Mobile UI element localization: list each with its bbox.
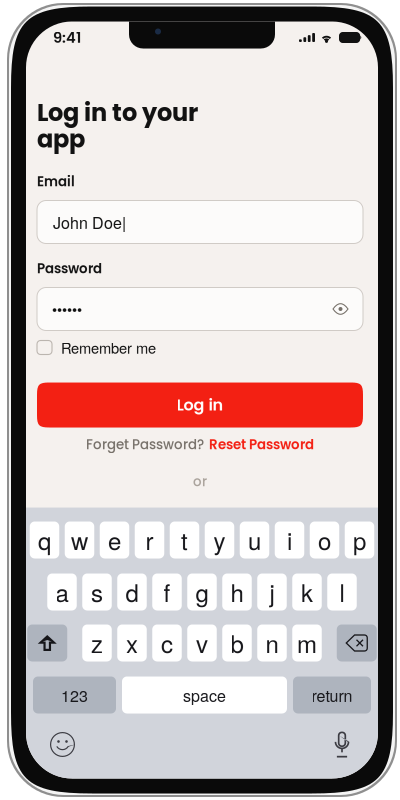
button[interactable]: r <box>135 521 164 558</box>
staticText: c <box>161 626 173 660</box>
staticText: p <box>353 523 366 557</box>
button[interactable]: Dictation <box>334 731 350 757</box>
button[interactable]: a <box>47 573 77 610</box>
button[interactable]: b <box>222 624 252 661</box>
staticText: h <box>230 575 243 609</box>
staticText: 9:41 <box>53 27 81 48</box>
staticText: r <box>145 523 153 557</box>
staticText: y <box>213 523 225 557</box>
button[interactable]: e <box>100 521 129 558</box>
button[interactable]: j <box>257 573 287 610</box>
button[interactable]: z <box>82 624 112 661</box>
staticText: m <box>297 626 317 660</box>
staticText: Reset Password <box>209 435 314 454</box>
button[interactable]: o <box>310 521 339 558</box>
button[interactable]: m <box>292 624 322 661</box>
staticText: d <box>125 575 138 609</box>
staticText: b <box>230 626 243 660</box>
button[interactable]: d <box>117 573 147 610</box>
button[interactable]: x <box>117 624 147 661</box>
staticText: v <box>196 626 208 660</box>
button[interactable]: p <box>345 521 374 558</box>
button[interactable]: Shift <box>27 624 67 661</box>
staticText: Log in to your <box>37 96 198 129</box>
staticText: w <box>71 523 88 557</box>
button[interactable]: w <box>65 521 94 558</box>
staticText: t <box>181 523 188 557</box>
button[interactable]: return <box>293 676 371 713</box>
button[interactable]: y <box>205 521 234 558</box>
staticText: 123 <box>61 683 88 706</box>
button[interactable]: Delete <box>337 624 377 661</box>
staticText: i <box>287 523 292 557</box>
staticText: g <box>195 575 208 609</box>
staticText: z <box>91 626 103 660</box>
staticText: n <box>265 626 278 660</box>
staticText: Remember me <box>61 337 156 358</box>
button[interactable]: n <box>257 624 287 661</box>
staticText: l <box>339 575 344 609</box>
button[interactable]: q <box>30 521 59 558</box>
staticText: •••••• <box>52 298 82 319</box>
staticText: j <box>269 575 274 609</box>
button[interactable]: l <box>327 573 357 610</box>
button[interactable]: u <box>240 521 269 558</box>
staticText: u <box>248 523 261 557</box>
staticText: e <box>108 523 121 557</box>
staticText: Forget Password? <box>86 435 204 454</box>
staticText: o <box>318 523 331 557</box>
staticText: a <box>55 575 68 609</box>
staticText: Password <box>37 259 102 278</box>
staticText: x <box>126 626 138 660</box>
button[interactable]: 123 <box>33 676 116 713</box>
staticText: app <box>37 122 85 156</box>
button[interactable]: t <box>170 521 199 558</box>
button[interactable]: k <box>292 573 322 610</box>
button[interactable]: Remember me <box>37 337 363 357</box>
button[interactable]: h <box>222 573 252 610</box>
staticText: Log in <box>176 394 223 416</box>
staticText: k <box>301 575 313 609</box>
staticText: f <box>163 575 170 609</box>
button[interactable]: space <box>122 676 287 713</box>
button[interactable]: Emoji keyboard <box>50 732 75 757</box>
button[interactable]: i <box>275 521 304 558</box>
button[interactable]: g <box>187 573 217 610</box>
button[interactable]: Log in <box>37 382 363 427</box>
staticText: or <box>193 472 207 491</box>
staticText: return <box>311 683 352 706</box>
button[interactable]: f <box>152 573 182 610</box>
staticText: John Doe| <box>53 210 126 233</box>
staticText: Email <box>37 172 75 191</box>
button[interactable]: v <box>187 624 217 661</box>
button[interactable]: Reset Password <box>209 435 314 454</box>
staticText: space <box>183 683 226 706</box>
staticText: s <box>91 575 103 609</box>
staticText: q <box>38 523 51 557</box>
button[interactable]: c <box>152 624 182 661</box>
button[interactable]: s <box>82 573 112 610</box>
button[interactable]: Show password <box>333 301 348 316</box>
